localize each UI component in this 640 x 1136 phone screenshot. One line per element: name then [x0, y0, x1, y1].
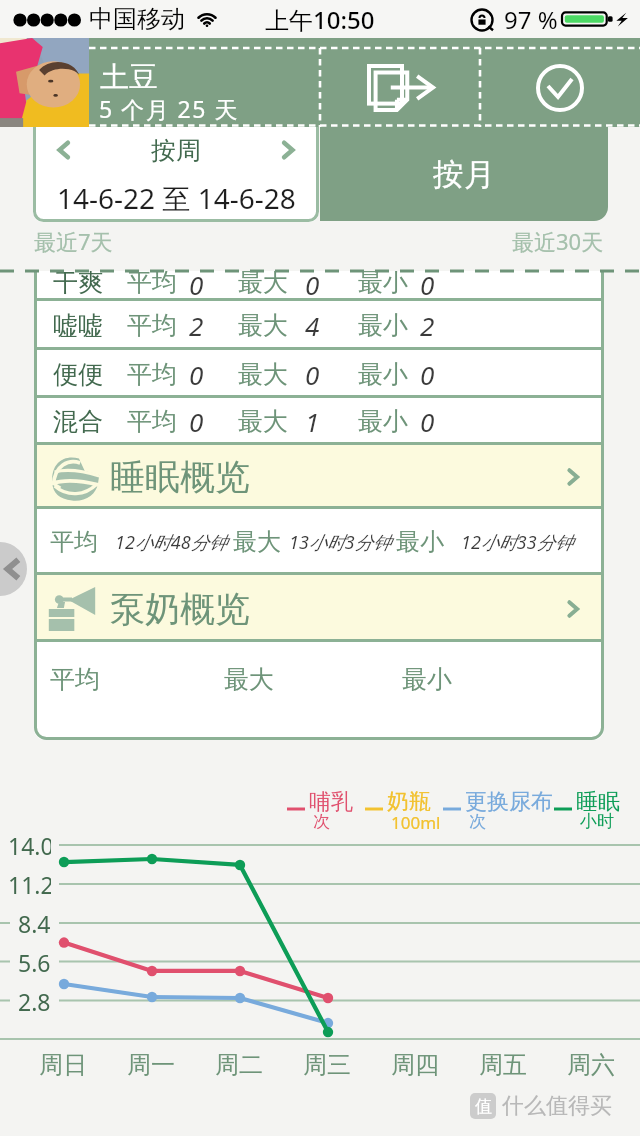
staticText: 周六: [567, 1050, 615, 1080]
staticText: 周一: [127, 1050, 175, 1080]
staticText: 平均: [127, 271, 177, 297]
staticText: 更换尿布: [465, 788, 553, 816]
staticText: 最大: [238, 406, 288, 437]
button[interactable]: 泵奶概览: [34, 575, 604, 642]
staticText: 小时: [580, 811, 614, 832]
staticText: 次: [469, 811, 486, 832]
staticText: 最大: [224, 664, 274, 695]
staticText: 最小: [402, 664, 452, 695]
button[interactable]: 睡眠概览: [34, 445, 604, 509]
staticText: 睡眠: [576, 788, 620, 816]
staticText: 平均: [50, 664, 100, 695]
staticText: 平均: [127, 310, 177, 341]
staticText: 0: [305, 357, 320, 392]
staticText: 100ml: [391, 811, 441, 834]
staticText: 中国移动: [89, 4, 185, 34]
button[interactable]: Back: [0, 542, 27, 596]
staticText: 周五: [479, 1050, 527, 1080]
staticText: 值: [475, 1096, 492, 1117]
button[interactable]: Done: [480, 48, 640, 127]
staticText: 最小: [396, 527, 444, 557]
staticText: 5.6: [18, 947, 51, 978]
staticText: 泵奶概览: [110, 587, 250, 631]
staticText: 上午10:50: [265, 3, 375, 36]
staticText: 土豆: [100, 59, 158, 96]
staticText: 什么值得买: [502, 1092, 612, 1120]
staticText: 最大: [233, 527, 281, 557]
staticText: 12小时48分钟: [115, 530, 227, 555]
staticText: 5 个月 25 天: [99, 93, 239, 124]
staticText: 最大: [238, 310, 288, 341]
staticText: 平均: [50, 527, 98, 557]
staticText: 2: [189, 308, 204, 343]
staticText: 8.4: [18, 908, 51, 939]
staticText: 次: [313, 811, 330, 832]
staticText: 1: [305, 404, 320, 439]
staticText: 哺乳: [309, 788, 353, 816]
staticText: 11.2: [8, 869, 51, 900]
staticText: 按周: [151, 135, 201, 166]
staticText: 2: [420, 308, 435, 343]
staticText: 12小时33分钟: [461, 530, 573, 555]
staticText: 0: [189, 404, 204, 439]
staticText: 最小: [358, 359, 408, 390]
staticText: 0: [420, 404, 435, 439]
staticText: 嘘嘘: [53, 310, 103, 341]
staticText: 平均: [127, 406, 177, 437]
staticText: 最大: [238, 359, 288, 390]
staticText: 13小时3分钟: [289, 530, 391, 555]
staticText: 2.8: [18, 986, 51, 1017]
staticText: 0: [420, 271, 435, 297]
staticText: 周日: [39, 1050, 87, 1080]
staticText: 0: [189, 357, 204, 392]
staticText: 周三: [303, 1050, 351, 1080]
staticText: 奶瓶: [387, 788, 431, 816]
staticText: 97 %: [504, 3, 558, 36]
staticText: 14.0: [8, 830, 51, 861]
staticText: 最大: [238, 271, 288, 297]
staticText: 按月: [433, 155, 495, 194]
staticText: 0: [189, 271, 204, 297]
staticText: 平均: [127, 359, 177, 390]
staticText: 14-6-22 至 14-6-28: [57, 179, 296, 217]
staticText: 4: [305, 308, 320, 343]
button[interactable]: Export: [320, 48, 480, 127]
staticText: 最近7天: [34, 226, 113, 256]
staticText: 干爽: [53, 271, 103, 297]
button[interactable]: 按月: [320, 127, 608, 221]
button[interactable]: 按周: [33, 127, 319, 222]
staticText: 便便: [53, 359, 103, 390]
staticText: 0: [420, 357, 435, 392]
staticText: 周四: [391, 1050, 439, 1080]
staticText: 最小: [358, 406, 408, 437]
staticText: 最小: [358, 310, 408, 341]
staticText: 周二: [215, 1050, 263, 1080]
staticText: 最小: [358, 271, 408, 297]
staticText: 最近30天: [512, 226, 604, 256]
staticText: 睡眠概览: [110, 455, 250, 499]
staticText: 0: [305, 271, 320, 297]
staticText: 混合: [53, 406, 103, 437]
